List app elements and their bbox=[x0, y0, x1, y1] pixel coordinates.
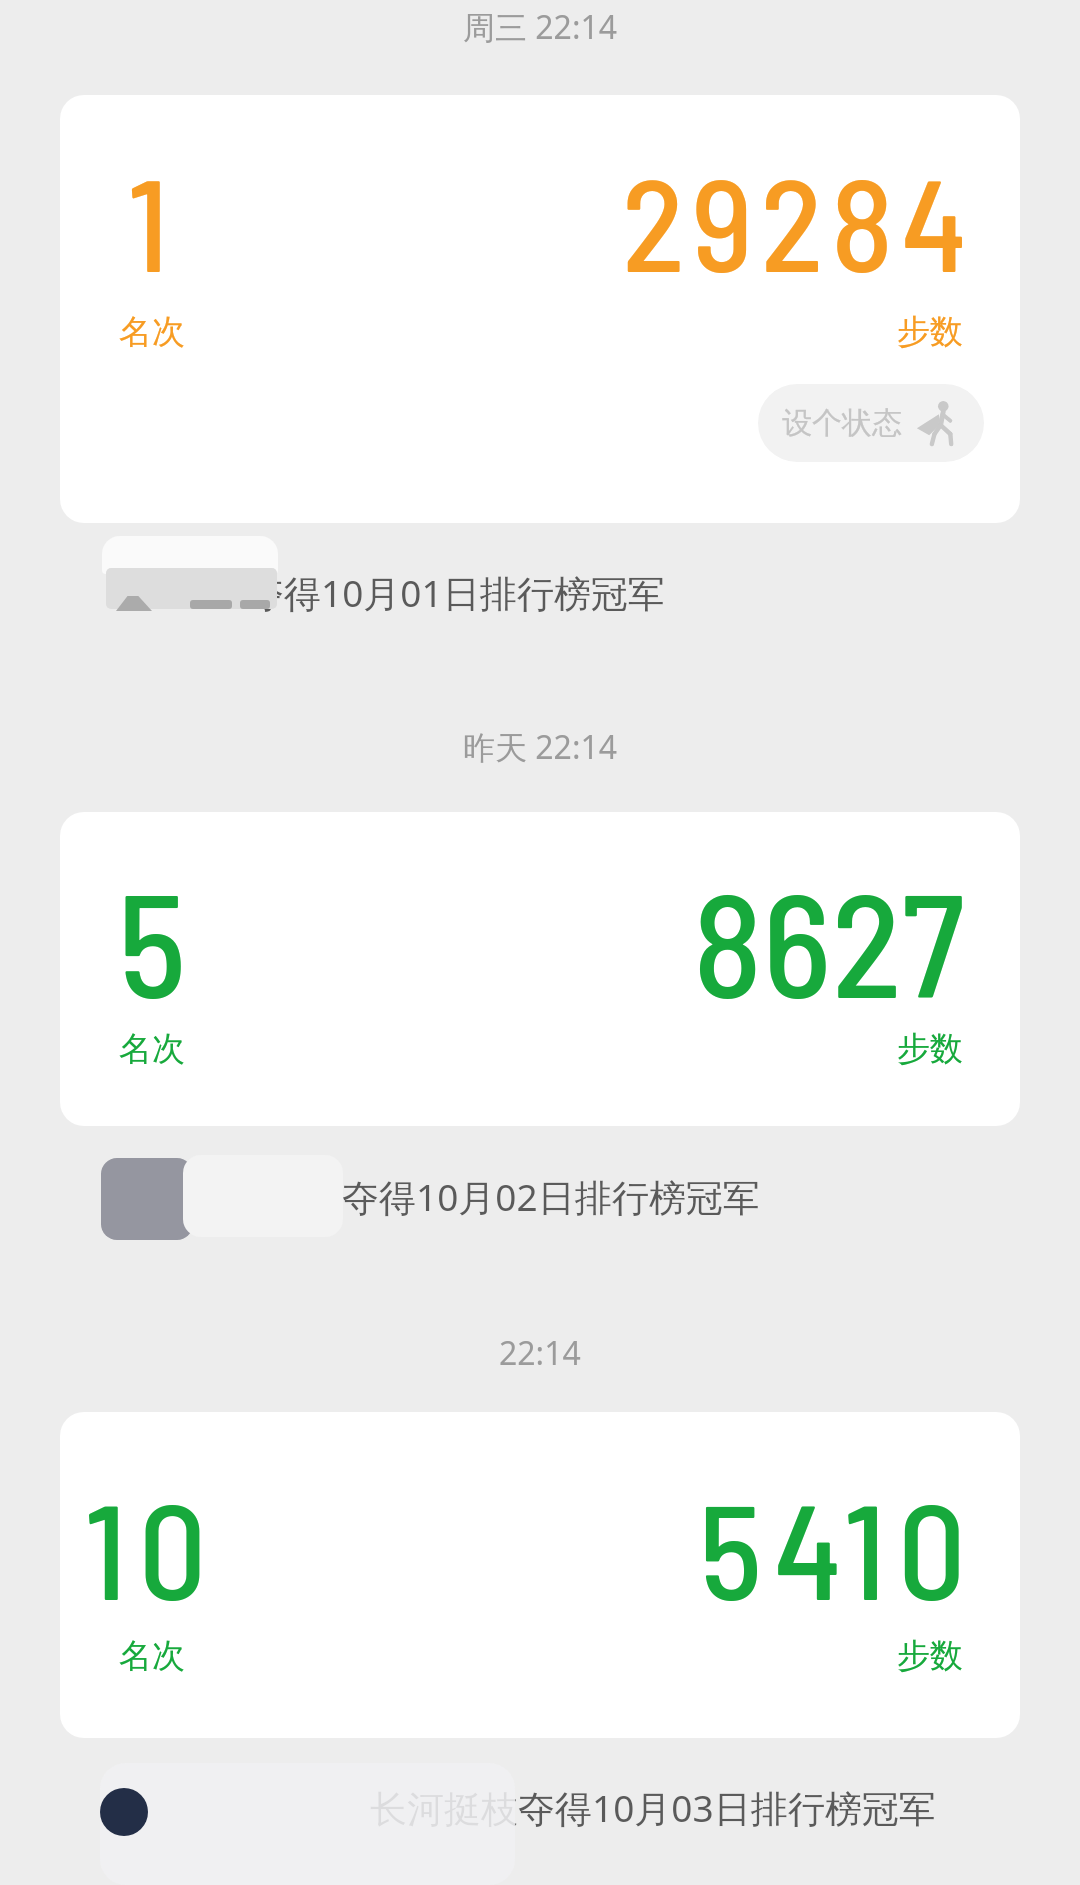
button[interactable]: 1 bbox=[60, 95, 1020, 523]
staticText: 步数 bbox=[897, 311, 963, 353]
staticText: 夺得10月01日排行榜冠军 bbox=[247, 567, 665, 618]
staticText: 周三 22:14 bbox=[463, 5, 618, 49]
staticText: 设个状态 bbox=[782, 404, 902, 442]
staticText: 步数 bbox=[897, 1635, 963, 1677]
staticText: 5410 bbox=[699, 1466, 978, 1627]
staticText: 8627 bbox=[693, 853, 965, 1027]
staticText: 长河挺枝夺得10月03日排行榜冠军 bbox=[370, 1782, 936, 1833]
staticText: 29284 bbox=[622, 142, 975, 298]
staticText: 10 bbox=[85, 1466, 219, 1627]
staticText: 夺得10月02日排行榜冠军 bbox=[342, 1171, 760, 1222]
button[interactable]: 设个状态 bbox=[758, 384, 984, 462]
staticText: 5 bbox=[118, 853, 187, 1027]
staticText: 22:14 bbox=[499, 1331, 581, 1375]
button[interactable]: 5 bbox=[60, 812, 1020, 1126]
button[interactable]: 10 bbox=[60, 1412, 1020, 1738]
staticText: 名次 bbox=[119, 311, 185, 353]
staticText: 名次 bbox=[119, 1635, 185, 1677]
staticText: 名次 bbox=[119, 1028, 185, 1070]
staticText: 昨天 22:14 bbox=[463, 725, 618, 769]
staticText: 1 bbox=[128, 142, 177, 298]
staticText: 步数 bbox=[897, 1028, 963, 1070]
